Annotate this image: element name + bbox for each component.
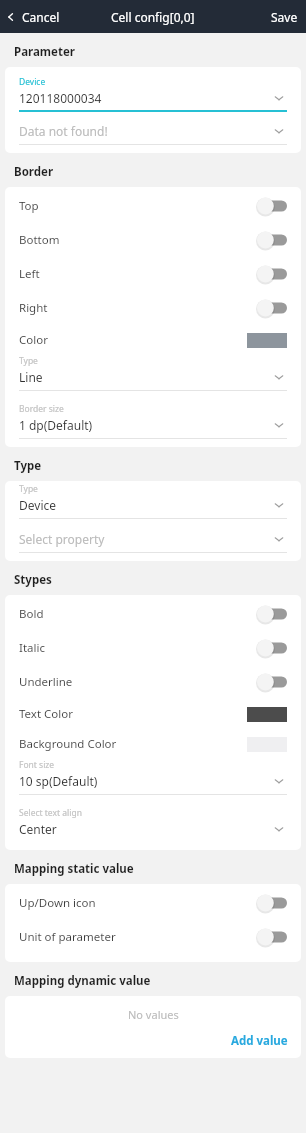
staticText: Data not found! (19, 123, 271, 139)
button[interactable]: Device (14, 69, 292, 112)
button[interactable]: Font size (14, 759, 292, 795)
staticText: 10 sp(Default) (19, 773, 271, 789)
staticText: Bottom (19, 232, 256, 248)
button[interactable]: Underline (14, 665, 292, 699)
staticText: Device (19, 497, 271, 513)
button[interactable]: Color (14, 325, 292, 355)
button[interactable]: Bottom (14, 223, 292, 257)
staticText: Mapping dynamic value (14, 973, 151, 989)
staticText: Stypes (14, 572, 52, 588)
staticText: Cell config[0,0] (111, 9, 195, 25)
button[interactable]: Type (14, 483, 292, 519)
button[interactable]: Background Color (14, 729, 292, 759)
staticText: Underline (19, 674, 256, 690)
button[interactable]: Up/Down icon (14, 886, 292, 920)
staticText: Select text align (19, 807, 82, 819)
staticText: Border size (19, 403, 64, 415)
other: Open dropdown (271, 821, 287, 837)
button[interactable]: Right (14, 291, 292, 325)
staticText: Cancel (22, 9, 60, 25)
staticText: Left (19, 266, 256, 282)
staticText: Center (19, 821, 271, 837)
button[interactable]: Cancel (0, 5, 68, 29)
button[interactable]: Type (14, 355, 292, 391)
other: Open dropdown (271, 417, 287, 433)
staticText: Background Color (19, 736, 247, 752)
staticText: Top (19, 198, 256, 214)
button[interactable]: Left (14, 257, 292, 291)
button[interactable]: Italic (14, 631, 292, 665)
other: Open dropdown (271, 531, 287, 547)
button[interactable]: Add value (227, 1030, 292, 1052)
staticText: 1 dp(Default) (19, 417, 271, 433)
other: Open dropdown (271, 123, 287, 139)
staticText: Device (19, 76, 46, 88)
button[interactable]: Data not found! (14, 123, 292, 145)
staticText: Italic (19, 640, 256, 656)
other: Open dropdown (271, 90, 287, 106)
other: Open dropdown (271, 369, 287, 385)
staticText: No values (128, 1007, 179, 1022)
button[interactable]: Select text align (14, 807, 292, 842)
button[interactable]: Save (263, 5, 306, 29)
staticText: Text Color (19, 706, 247, 722)
button[interactable]: Top (14, 189, 292, 223)
button[interactable]: Unit of parameter (14, 920, 292, 954)
button[interactable]: Text Color (14, 699, 292, 729)
staticText: Select property (19, 531, 271, 547)
staticText: Save (271, 9, 298, 25)
button[interactable]: Border size (14, 403, 292, 439)
staticText: Color (19, 332, 247, 348)
staticText: Type (19, 355, 38, 367)
staticText: Mapping static value (14, 861, 134, 877)
button[interactable]: Select property (14, 531, 292, 553)
staticText: Line (19, 369, 271, 385)
staticText: Add value (231, 1033, 288, 1049)
staticText: Up/Down icon (19, 895, 256, 911)
other: Open dropdown (271, 773, 287, 789)
staticText: Right (19, 300, 256, 316)
staticText: Type (14, 458, 42, 474)
staticText: Font size (19, 759, 55, 771)
staticText: Type (19, 483, 38, 495)
staticText: Parameter (14, 44, 75, 60)
staticText: Bold (19, 606, 256, 622)
staticText: Unit of parameter (19, 929, 256, 945)
other: Open dropdown (271, 497, 287, 513)
staticText: Border (14, 164, 54, 180)
staticText: 120118000034 (19, 90, 271, 106)
button[interactable]: Bold (14, 597, 292, 631)
